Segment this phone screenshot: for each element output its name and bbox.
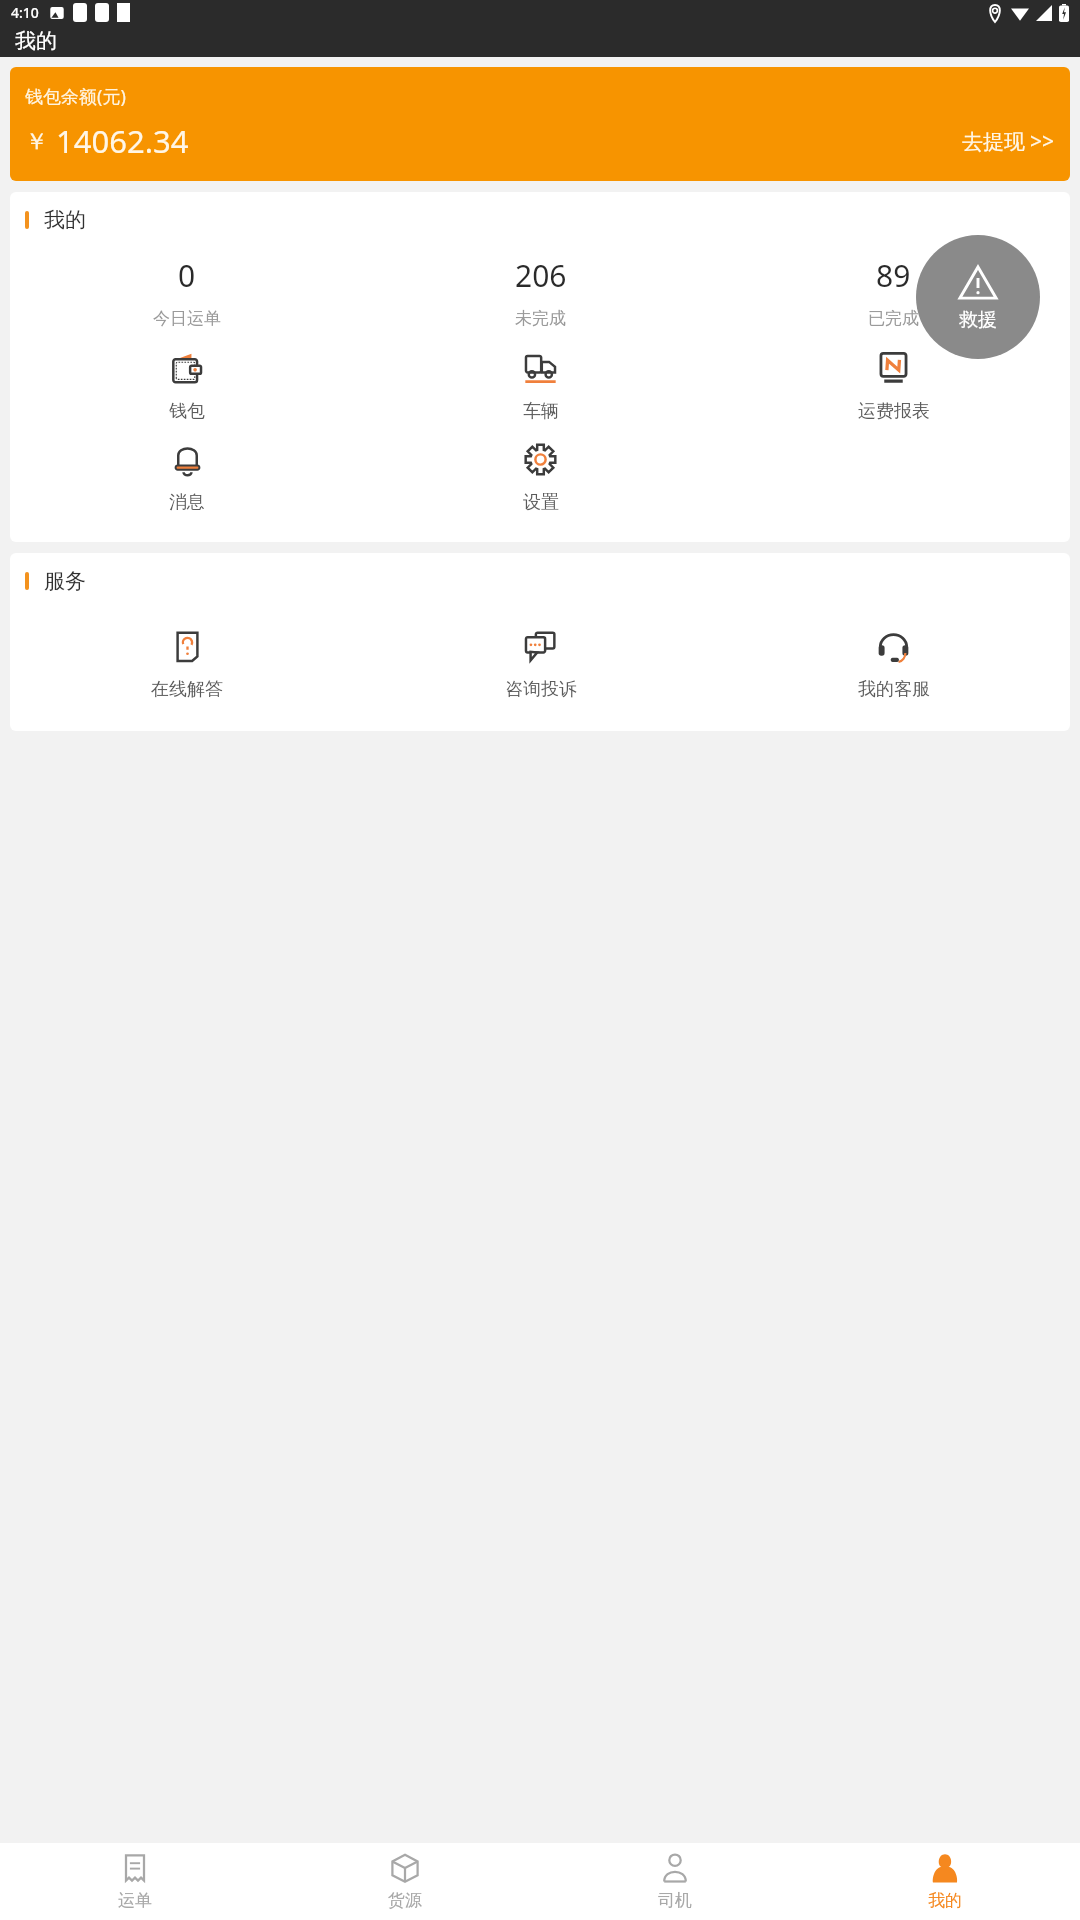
staticText: 今日运单 — [153, 308, 221, 329]
staticText: 4:10 — [11, 3, 39, 22]
staticText: 运单 — [118, 1890, 152, 1911]
staticText: 服务 — [44, 568, 86, 594]
staticText: 消息 — [169, 491, 205, 514]
button[interactable]: 在线解答 — [10, 630, 364, 701]
staticText: 0 — [178, 255, 196, 296]
button[interactable]: 89 — [717, 255, 1070, 329]
button[interactable]: 货源 — [270, 1843, 540, 1920]
staticText: ￥ — [25, 127, 48, 156]
staticText: 我的客服 — [858, 678, 930, 701]
staticText: >> — [1030, 127, 1055, 156]
staticText: 司机 — [658, 1890, 692, 1911]
staticText: 钱包余额(元) — [25, 84, 126, 109]
button[interactable]: 钱包 — [10, 352, 364, 423]
staticText: 已完成 — [868, 308, 919, 329]
button[interactable]: 0 — [10, 255, 364, 329]
button[interactable]: 司机 — [540, 1843, 810, 1920]
button[interactable]: 运费报表 — [717, 352, 1070, 423]
button[interactable]: 设置 — [364, 443, 717, 514]
staticText: 钱包 — [169, 400, 205, 423]
button[interactable]: 我的 — [810, 1843, 1080, 1920]
staticText: 设置 — [523, 491, 559, 514]
staticText: 运费报表 — [858, 400, 930, 423]
staticText: 在线解答 — [151, 678, 223, 701]
staticText: 我的 — [15, 28, 57, 54]
staticText: 206 — [515, 255, 567, 296]
button[interactable]: 去提现 — [962, 127, 1055, 156]
staticText: 我的 — [928, 1890, 962, 1911]
button[interactable]: 我的客服 — [717, 630, 1070, 701]
button[interactable]: 车辆 — [364, 352, 717, 423]
button[interactable]: 钱包余额(元) — [10, 67, 1070, 181]
staticText: 89 — [876, 255, 911, 296]
staticText: 救援 — [959, 308, 997, 332]
staticText: 未完成 — [515, 308, 566, 329]
button[interactable]: 救援 — [916, 235, 1040, 359]
button[interactable]: 消息 — [10, 443, 364, 514]
button[interactable]: 咨询投诉 — [364, 630, 717, 701]
staticText: 车辆 — [523, 400, 559, 423]
staticText: 去提现 — [962, 129, 1025, 155]
button[interactable]: 运单 — [0, 1843, 270, 1920]
staticText: 我的 — [44, 207, 86, 233]
button[interactable]: 206 — [364, 255, 717, 329]
staticText: 咨询投诉 — [505, 678, 577, 701]
staticText: 货源 — [388, 1890, 422, 1911]
staticText: 14062.34 — [56, 120, 189, 162]
